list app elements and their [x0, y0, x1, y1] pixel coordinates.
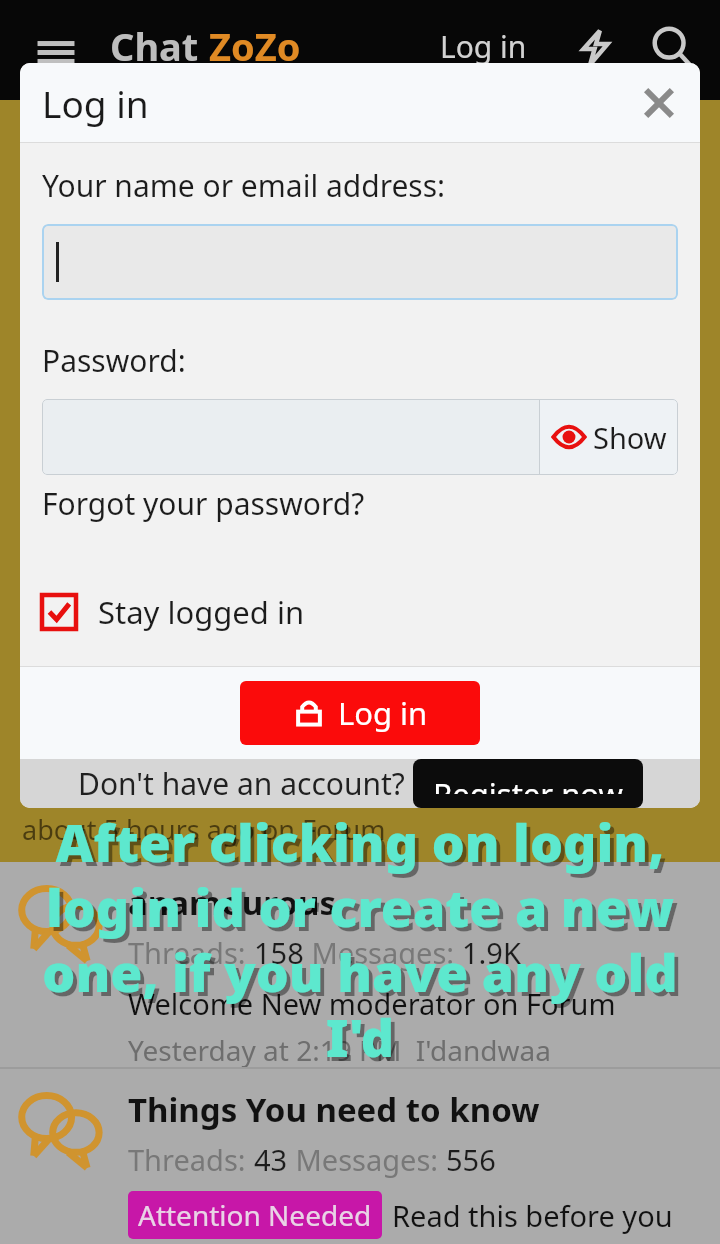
staticText: one, if you have any old	[4, 940, 720, 1011]
button[interactable]: Forgot your password?	[42, 483, 365, 524]
staticText: Yesterday at 2:19 PM I'dandwaa	[128, 1031, 551, 1067]
staticText: 43	[254, 1140, 288, 1179]
staticText: Attention Needed	[138, 1196, 372, 1234]
button[interactable]	[42, 224, 678, 300]
staticText: Threads:	[128, 933, 254, 972]
staticText: Log in	[440, 26, 527, 67]
staticText: Chat	[110, 20, 209, 72]
staticText: Messages:	[304, 933, 462, 972]
button[interactable]: Search	[648, 22, 696, 70]
staticText: ZoZo	[209, 20, 301, 72]
staticText: After clicking on login,	[4, 810, 720, 881]
staticText: Things You need to know	[128, 1087, 540, 1132]
staticText: I'd	[0, 1001, 720, 1072]
button[interactable]: Register now	[413, 759, 643, 808]
staticText: Your name or email address:	[42, 165, 446, 206]
staticText: Welcome New moderator on Forum Amorous	[128, 984, 720, 1023]
button[interactable]: Alerts	[572, 22, 620, 70]
staticText: login id or create a new	[4, 875, 720, 946]
button[interactable]: Stay logged in	[42, 586, 305, 638]
staticText: 556	[446, 1140, 496, 1179]
staticText: Log in	[338, 692, 428, 734]
staticText: Don't have an account?	[78, 763, 405, 804]
staticText: Log in	[42, 78, 149, 128]
button[interactable]: Show	[540, 399, 678, 475]
staticText: 158	[254, 933, 304, 972]
button[interactable]: Log in	[440, 26, 527, 67]
staticText: Read this before you think to ...	[392, 1196, 720, 1235]
staticText: one, if you have any old	[0, 936, 720, 1007]
staticText: Stay logged in	[98, 591, 305, 633]
staticText: After clicking on login,	[0, 806, 720, 877]
staticText: Messages:	[288, 1140, 446, 1179]
staticText: Show	[593, 418, 667, 457]
button[interactable]: Things You need to know	[0, 1069, 720, 1244]
staticText: login id or create a new	[0, 871, 720, 942]
button[interactable]: Close	[636, 80, 682, 126]
staticText: 1.9K	[462, 933, 521, 972]
staticText: about 5 hours ago on Forum	[22, 811, 386, 848]
button[interactable]: Log in	[240, 681, 480, 745]
staticText: Password:	[42, 340, 186, 381]
staticText: anamourous	[128, 880, 336, 925]
button[interactable]	[42, 399, 539, 475]
button[interactable]: Menu	[28, 22, 84, 78]
button[interactable]: anamourous	[0, 862, 720, 1067]
staticText: Register now	[433, 773, 623, 794]
staticText: Threads:	[128, 1140, 254, 1179]
staticText: Forgot your password?	[42, 483, 365, 524]
staticText: I'd	[4, 1005, 720, 1076]
